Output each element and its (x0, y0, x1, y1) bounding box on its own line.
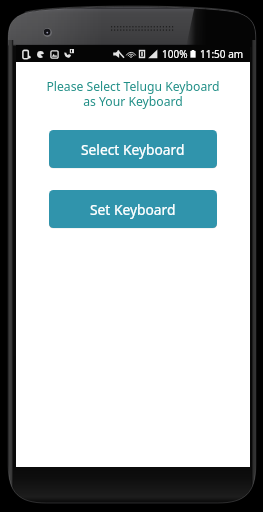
button[interactable]: Set Keyboard (49, 190, 217, 228)
staticText: Select Keyboard (81, 140, 185, 159)
staticText: 100% (162, 47, 188, 61)
staticText: 11:50 am (200, 47, 244, 61)
staticText: Please Select Telugu Keyboard as Your Ke… (16, 78, 250, 109)
button[interactable]: Select Keyboard (49, 130, 217, 168)
staticText: Set Keyboard (90, 200, 176, 219)
